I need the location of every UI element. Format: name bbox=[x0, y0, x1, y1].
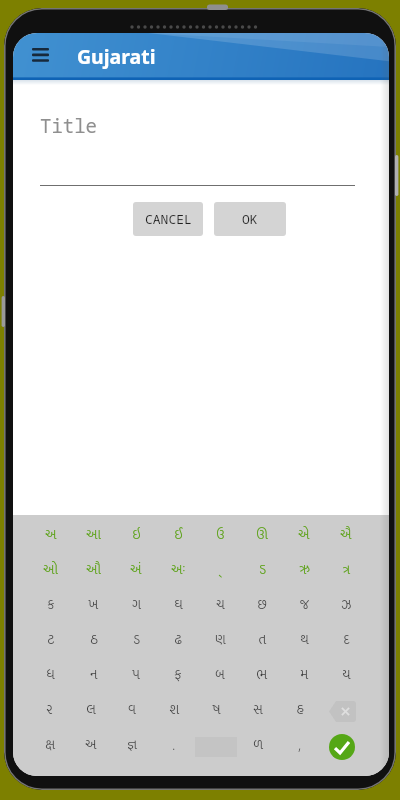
button[interactable] bbox=[321, 725, 363, 760]
button[interactable]: ળ bbox=[237, 725, 279, 760]
button[interactable]: ણ bbox=[199, 620, 241, 655]
staticText: વ bbox=[128, 698, 136, 721]
staticText: ઘ bbox=[174, 593, 183, 616]
button[interactable]: OK bbox=[214, 202, 286, 236]
staticText: જ bbox=[300, 593, 309, 616]
button[interactable]: દ bbox=[325, 620, 367, 655]
button[interactable]: ઉ bbox=[199, 515, 241, 550]
button[interactable]: ઋ bbox=[283, 550, 325, 585]
button[interactable]: ડ bbox=[115, 620, 157, 655]
button[interactable]: ધ bbox=[29, 655, 72, 690]
staticText: ત્ર bbox=[342, 558, 350, 581]
staticText: પ bbox=[132, 663, 140, 686]
staticText: Title bbox=[40, 113, 98, 139]
staticText: ઠ bbox=[90, 628, 98, 651]
button[interactable]: , bbox=[279, 725, 321, 760]
staticText: દ bbox=[343, 628, 350, 651]
button[interactable]: ઊ bbox=[241, 515, 283, 550]
button[interactable]: અં bbox=[115, 550, 157, 585]
staticText: ય bbox=[342, 663, 351, 686]
button[interactable]: ઢ bbox=[157, 620, 199, 655]
staticText: અ bbox=[45, 523, 57, 546]
staticText: ષ bbox=[212, 698, 221, 721]
staticText: ડ bbox=[133, 628, 140, 651]
button[interactable]: જ bbox=[283, 585, 325, 620]
button[interactable]: ટ bbox=[29, 620, 72, 655]
staticText: અઃ bbox=[171, 558, 186, 581]
staticText: ્ bbox=[218, 558, 222, 581]
button[interactable]: ઓ bbox=[29, 550, 72, 585]
staticText: ઔ bbox=[86, 558, 101, 581]
staticText: છ bbox=[257, 593, 267, 616]
button[interactable]: ઝ bbox=[325, 585, 367, 620]
staticText: . bbox=[172, 735, 176, 754]
staticText: ઝ bbox=[341, 593, 352, 616]
staticText: ઓ bbox=[43, 558, 58, 581]
staticText: ધ bbox=[46, 663, 55, 686]
button[interactable]: ઽ bbox=[241, 550, 283, 585]
button[interactable] bbox=[28, 43, 52, 67]
staticText: , bbox=[298, 735, 302, 754]
button[interactable]: થ bbox=[283, 620, 325, 655]
staticText: ઉ bbox=[216, 523, 225, 546]
staticText: ળ bbox=[253, 733, 263, 756]
button[interactable]: સ bbox=[237, 690, 279, 725]
button[interactable] bbox=[195, 725, 237, 760]
button[interactable]: ય bbox=[325, 655, 367, 690]
button[interactable]: અઃ bbox=[157, 550, 199, 585]
button[interactable]: ઘ bbox=[157, 585, 199, 620]
staticText: CANCEL bbox=[145, 210, 192, 228]
button[interactable]: ઇ bbox=[115, 515, 157, 550]
button[interactable]: ઔ bbox=[72, 550, 115, 585]
button[interactable]: ક bbox=[29, 585, 72, 620]
button[interactable]: હ bbox=[279, 690, 321, 725]
staticText: જ્ઞ bbox=[127, 733, 137, 756]
staticText: ક bbox=[47, 593, 55, 616]
button[interactable]: ત bbox=[241, 620, 283, 655]
button[interactable]: ઠ bbox=[72, 620, 115, 655]
button[interactable]: ્ bbox=[199, 550, 241, 585]
staticText: ભ bbox=[256, 663, 268, 686]
button[interactable]: ઈ bbox=[157, 515, 199, 550]
staticText: ત bbox=[258, 628, 267, 651]
button[interactable]: ર bbox=[29, 690, 70, 725]
button[interactable]: ભ bbox=[241, 655, 283, 690]
button[interactable]: શ bbox=[153, 690, 195, 725]
button[interactable]: અ bbox=[29, 515, 72, 550]
button[interactable]: વ bbox=[111, 690, 153, 725]
button[interactable]: આ bbox=[72, 515, 115, 550]
staticText: ક્ષ bbox=[45, 733, 55, 756]
button[interactable]: અ bbox=[70, 725, 111, 760]
button[interactable]: છ bbox=[241, 585, 283, 620]
button[interactable]: ક્ષ bbox=[29, 725, 70, 760]
staticText: મ bbox=[300, 663, 309, 686]
staticText: Gujarati bbox=[77, 43, 156, 70]
staticText: એ bbox=[298, 523, 310, 546]
staticText: અ bbox=[85, 733, 97, 756]
button[interactable]: ત્ર bbox=[325, 550, 367, 585]
staticText: ઋ bbox=[299, 558, 310, 581]
button[interactable]: ન bbox=[72, 655, 115, 690]
button[interactable]: પ bbox=[115, 655, 157, 690]
staticText: ણ bbox=[215, 628, 226, 651]
button[interactable]: CANCEL bbox=[133, 202, 203, 236]
staticText: ઇ bbox=[132, 523, 141, 546]
staticText: OK bbox=[242, 210, 258, 228]
button[interactable]: લ bbox=[70, 690, 111, 725]
staticText: થ bbox=[300, 628, 309, 651]
button[interactable] bbox=[321, 690, 363, 725]
button[interactable]: બ bbox=[199, 655, 241, 690]
staticText: ઽ bbox=[259, 558, 266, 581]
button[interactable]: ગ bbox=[115, 585, 157, 620]
staticText: શ bbox=[169, 698, 180, 721]
button[interactable]: મ bbox=[283, 655, 325, 690]
button[interactable]: ઐ bbox=[325, 515, 367, 550]
button[interactable]: એ bbox=[283, 515, 325, 550]
button[interactable]: ષ bbox=[195, 690, 237, 725]
staticText: અં bbox=[130, 558, 142, 581]
button[interactable]: ખ bbox=[72, 585, 115, 620]
button[interactable]: ફ bbox=[157, 655, 199, 690]
button[interactable]: જ્ઞ bbox=[111, 725, 153, 760]
button[interactable]: ચ bbox=[199, 585, 241, 620]
